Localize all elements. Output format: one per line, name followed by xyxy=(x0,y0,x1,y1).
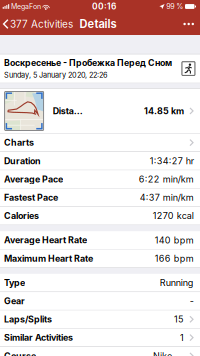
button[interactable]: Maximum Heart Rate xyxy=(0,249,200,268)
button[interactable]: Average Heart Rate xyxy=(0,231,200,249)
staticText: Course xyxy=(4,350,36,356)
staticText: Dista... xyxy=(53,105,83,116)
staticText: 00:16 xyxy=(92,1,116,11)
staticText: Воскресенье - Пробежка Перед Сном xyxy=(4,58,172,68)
button[interactable]: Fastest Pace xyxy=(0,189,200,207)
staticText: 4:37 min/km xyxy=(140,192,194,203)
staticText: 1 xyxy=(180,332,184,343)
staticText: Nike ... xyxy=(153,350,184,356)
button[interactable]: Dista... xyxy=(0,88,200,134)
staticText: Type xyxy=(4,277,25,288)
staticText: MegaFon xyxy=(11,2,41,11)
staticText: 140 bpm xyxy=(155,235,194,246)
button[interactable]: Charts xyxy=(0,134,200,152)
staticText: Fastest Pace xyxy=(4,192,58,203)
staticText: Duration xyxy=(4,155,41,166)
button[interactable]: Average Pace xyxy=(0,170,200,189)
staticText: Sunday, 5 January 2020, 22:26 xyxy=(4,71,108,79)
staticText: Gear xyxy=(4,296,25,306)
staticText: 14.85 km xyxy=(144,105,184,116)
button[interactable]: Laps/Splits xyxy=(0,310,200,329)
staticText: - xyxy=(190,295,194,306)
staticText: Average Pace xyxy=(4,174,63,185)
staticText: Maximum Heart Rate xyxy=(4,253,93,264)
staticText: 1270 kcal xyxy=(153,210,194,221)
staticText: Details xyxy=(79,17,116,31)
staticText: Average Heart Rate xyxy=(4,235,87,245)
staticText: Calories xyxy=(4,210,39,221)
staticText: 15 xyxy=(174,314,184,325)
button[interactable]: Type xyxy=(0,274,200,292)
button[interactable]: Course xyxy=(0,347,200,356)
button[interactable]: Similar Activities xyxy=(0,329,200,347)
staticText: Charts xyxy=(4,137,34,148)
button[interactable]: 377 Activities xyxy=(0,13,77,35)
staticText: 99 % xyxy=(166,2,183,11)
staticText: Laps/Splits xyxy=(4,314,52,325)
staticText: 377 Activities xyxy=(10,18,73,30)
button[interactable]: Duration xyxy=(0,152,200,170)
button[interactable]: More options xyxy=(175,13,200,35)
button[interactable]: Calories xyxy=(0,207,200,225)
staticText: Running xyxy=(160,277,194,288)
staticText: 1:34:27 hr xyxy=(150,155,194,166)
staticText: Similar Activities xyxy=(4,332,73,343)
button[interactable]: Gear xyxy=(0,292,200,310)
staticText: 6:22 min/km xyxy=(139,174,194,185)
staticText: 166 bpm xyxy=(155,253,194,264)
